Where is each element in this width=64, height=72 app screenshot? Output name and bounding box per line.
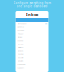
staticText: General <box>17 26 23 28</box>
button[interactable]: Updates <box>15 59 48 63</box>
button[interactable]: Storage <box>15 42 48 46</box>
staticText: Storage <box>17 43 23 45</box>
staticText: Sounds <box>17 40 23 42</box>
button[interactable]: Security <box>15 56 48 59</box>
button[interactable]: Sharing <box>15 53 48 56</box>
staticText: Support <box>17 67 23 69</box>
button[interactable]: Network <box>15 46 48 49</box>
staticText: Inbox <box>26 12 38 17</box>
button[interactable]: General <box>15 25 48 29</box>
staticText: Workspace <box>17 23 26 25</box>
staticText: Edit <box>44 23 46 25</box>
button[interactable]: Account <box>15 29 48 32</box>
staticText: Security <box>17 57 23 59</box>
button[interactable]: Edit <box>44 23 46 25</box>
staticText: one single dashboard <box>16 4 47 8</box>
button[interactable]: Display <box>15 36 48 39</box>
button[interactable]: Language <box>15 63 48 66</box>
staticText: Configure everything from <box>13 1 50 5</box>
staticText: Account <box>17 30 23 31</box>
button[interactable]: Support <box>15 66 48 70</box>
button[interactable]: Privacy <box>15 32 48 36</box>
staticText: Network <box>17 47 23 48</box>
staticText: Display <box>17 36 22 38</box>
staticText: Privacy <box>17 33 23 35</box>
button[interactable]: Sounds <box>15 39 48 42</box>
staticText: Sharing <box>17 53 23 55</box>
staticText: Updates <box>17 60 23 62</box>
staticText: Language <box>17 64 25 65</box>
button[interactable]: Devices <box>15 49 48 53</box>
staticText: Devices <box>17 50 23 52</box>
